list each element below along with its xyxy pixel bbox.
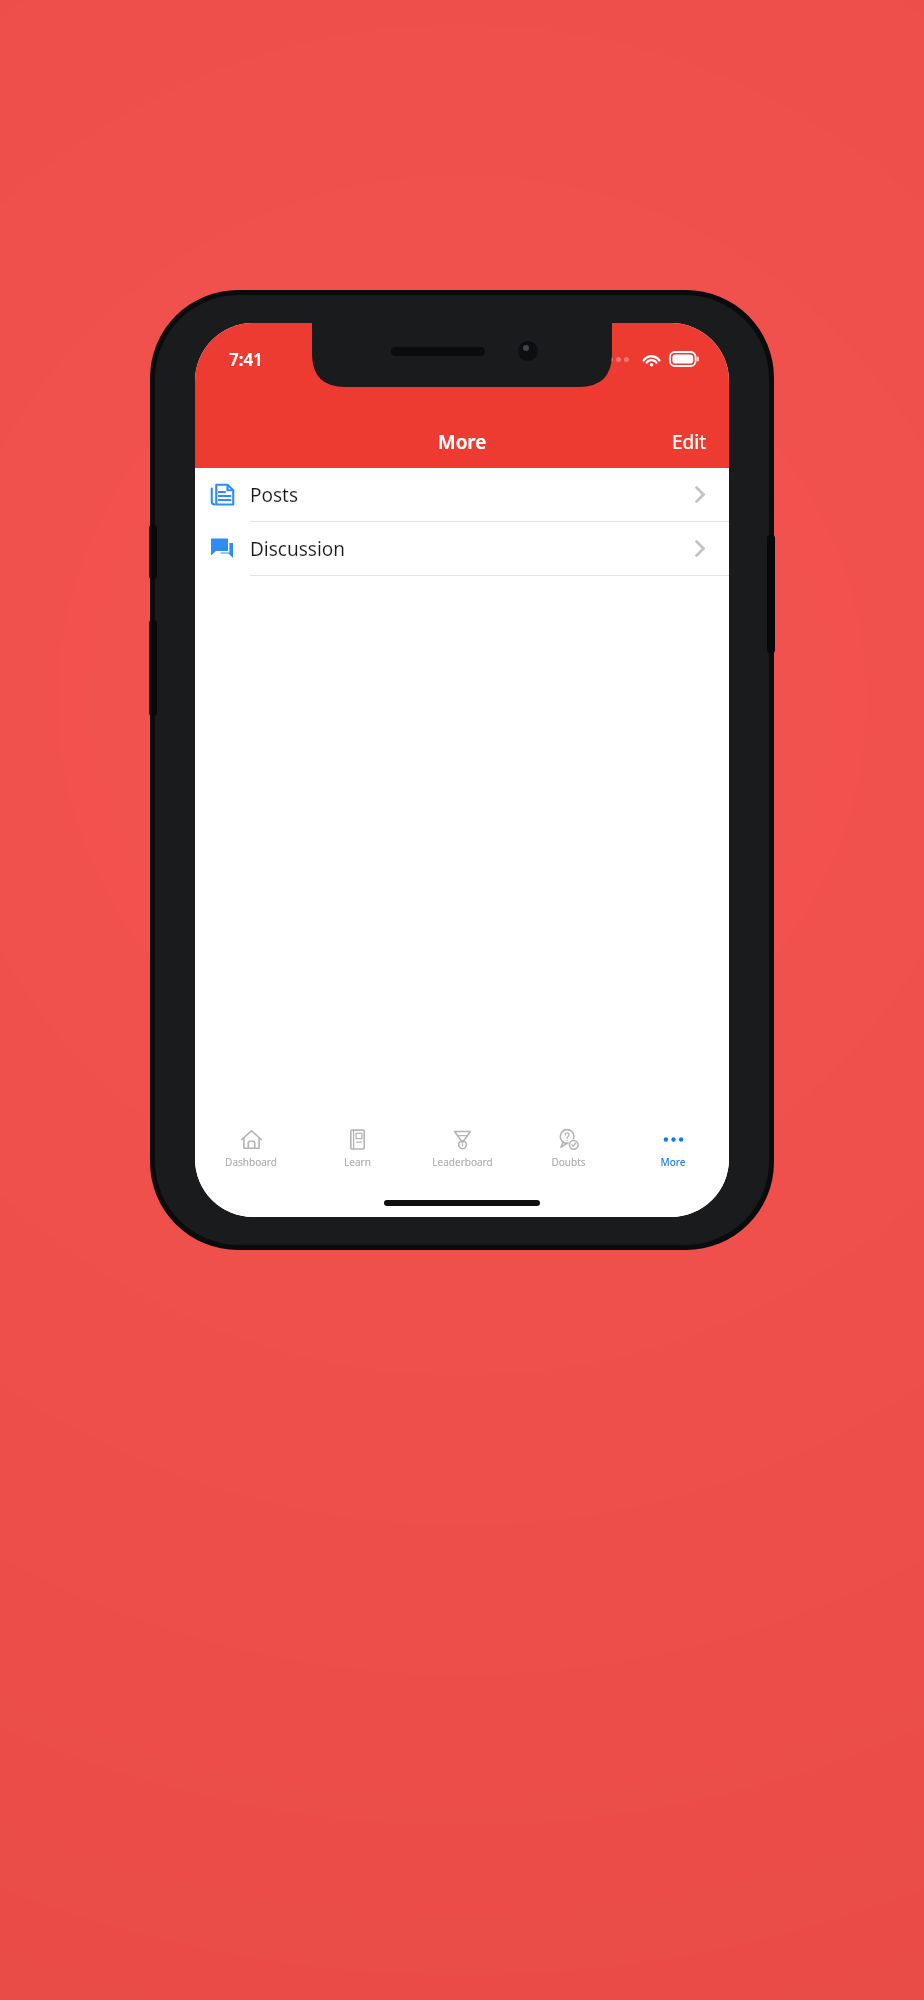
staticText: Learn — [344, 1155, 371, 1169]
staticText: More — [438, 429, 487, 455]
staticText: Leaderboard — [432, 1155, 493, 1169]
staticText: Doubts — [551, 1155, 586, 1169]
staticText: Dashboard — [225, 1155, 277, 1169]
button[interactable]: More — [623, 1119, 723, 1175]
staticText: Edit — [672, 429, 707, 455]
button[interactable]: Leaderboard — [412, 1119, 512, 1175]
button[interactable]: Edit — [650, 419, 729, 465]
staticText: Discussion — [250, 536, 346, 562]
staticText: Posts — [250, 482, 299, 508]
staticText: 7:41 — [229, 348, 263, 371]
staticText: More — [660, 1155, 686, 1169]
button[interactable]: Doubts — [518, 1119, 618, 1175]
button[interactable]: Dashboard — [201, 1119, 301, 1175]
button[interactable]: Posts — [195, 468, 729, 522]
button[interactable]: Discussion — [195, 522, 729, 576]
button[interactable]: Learn — [307, 1119, 407, 1175]
